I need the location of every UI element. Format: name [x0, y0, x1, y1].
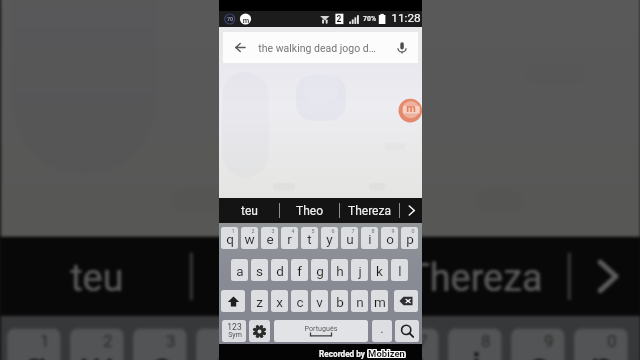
staticText: e [149, 341, 174, 360]
staticText: Sym [228, 331, 242, 339]
staticText: Mobizen [369, 348, 406, 359]
button[interactable]: 6 [321, 227, 338, 249]
button[interactable]: 2 [241, 227, 258, 249]
button[interactable]: 4 [196, 328, 250, 360]
button[interactable]: z [251, 290, 268, 312]
staticText: 2 [335, 14, 343, 24]
staticText: . [380, 321, 384, 336]
button[interactable]: a [231, 259, 248, 281]
button[interactable]: 2 [70, 328, 124, 360]
staticText: x [276, 294, 283, 310]
staticText: 2 [102, 332, 114, 351]
button[interactable]: teu [1, 237, 190, 316]
staticText: 8 [480, 332, 492, 351]
staticText: d [276, 263, 284, 279]
staticText: m [242, 16, 250, 25]
button[interactable]: n [351, 290, 368, 312]
staticText: 9 [391, 228, 395, 234]
staticText: o [527, 341, 552, 360]
staticText: Mobizen [367, 349, 404, 360]
staticText: g [316, 263, 324, 279]
staticText: 3 [271, 228, 275, 234]
staticText: 4 [291, 228, 295, 234]
staticText: Mobizen [368, 348, 405, 359]
button[interactable]: 9 [511, 328, 565, 360]
staticText: 7 [351, 228, 355, 234]
staticText: w [244, 231, 255, 247]
button[interactable]: 7 [341, 227, 358, 249]
button[interactable]: Theo [193, 237, 379, 316]
staticText: o [386, 231, 394, 247]
button[interactable]: 6 [322, 328, 376, 360]
staticText: 8 [371, 228, 375, 234]
staticText: teu [241, 204, 258, 218]
staticText: m [406, 102, 416, 115]
button[interactable]: 4 [281, 227, 298, 249]
staticText: p [406, 231, 414, 247]
button[interactable]: 0 [401, 227, 418, 249]
button[interactable]: v [311, 290, 328, 312]
staticText: c [296, 294, 304, 310]
button[interactable]: More suggestions [571, 237, 640, 316]
button[interactable]: d [271, 259, 288, 281]
button[interactable]: 8 [448, 328, 502, 360]
button[interactable]: s [251, 259, 268, 281]
staticText: 6 [331, 228, 335, 234]
button[interactable]: Back [230, 37, 251, 58]
staticText: 70% [363, 15, 376, 23]
button[interactable]: x [271, 290, 288, 312]
button[interactable]: Português [274, 320, 368, 342]
button[interactable]: f [291, 259, 308, 281]
button[interactable]: 7 [385, 328, 439, 360]
staticText: Thereza [348, 204, 391, 218]
staticText: teu [70, 256, 124, 300]
staticText: Mobizen [368, 349, 405, 360]
button[interactable]: Voice search [392, 38, 412, 58]
button[interactable]: j [351, 259, 368, 281]
button[interactable]: c [291, 290, 308, 312]
staticText: 5 [291, 332, 303, 351]
button[interactable]: 3 [133, 328, 187, 360]
staticText: u [401, 341, 426, 360]
button[interactable]: Thereza [382, 237, 568, 316]
button[interactable]: 5 [301, 227, 318, 249]
button[interactable]: 123 [222, 320, 246, 342]
button[interactable]: Settings [249, 320, 270, 342]
button[interactable]: teu [219, 198, 279, 223]
button[interactable]: b [331, 290, 348, 312]
staticText: r [215, 341, 231, 360]
button[interactable]: 5 [259, 328, 313, 360]
button[interactable]: 1 [7, 328, 61, 360]
staticText: b [336, 294, 344, 310]
staticText: Theo [296, 204, 323, 218]
button[interactable]: g [311, 259, 328, 281]
button[interactable]: Thereza [340, 198, 399, 223]
staticText: 9 [543, 332, 555, 351]
button[interactable]: Shift [221, 290, 245, 312]
staticText: Mobizen [367, 347, 404, 358]
button[interactable]: Backspace [394, 290, 418, 312]
button[interactable]: Theo [280, 198, 339, 223]
button[interactable]: h [331, 259, 348, 281]
staticText: 70 [226, 16, 234, 22]
button[interactable]: More suggestions [400, 198, 422, 223]
button[interactable]: . [372, 320, 392, 342]
staticText: 3 [165, 332, 177, 351]
staticText: Português [304, 324, 338, 332]
button[interactable]: k [371, 259, 388, 281]
button[interactable]: 9 [381, 227, 398, 249]
button[interactable]: 8 [361, 227, 378, 249]
button[interactable]: l [391, 259, 408, 281]
staticText: Mobizen [368, 347, 405, 358]
button[interactable]: 0 [574, 328, 628, 360]
button[interactable]: m [371, 290, 388, 312]
button[interactable]: Search [395, 320, 419, 342]
staticText: Mobizen [369, 349, 406, 360]
button[interactable]: Back [223, 32, 418, 63]
staticText: 5 [311, 228, 315, 234]
button[interactable]: 3 [261, 227, 278, 249]
staticText: 4 [228, 332, 240, 351]
staticText: q [23, 341, 48, 360]
button[interactable]: 1 [221, 227, 238, 249]
staticText: s [256, 263, 263, 279]
